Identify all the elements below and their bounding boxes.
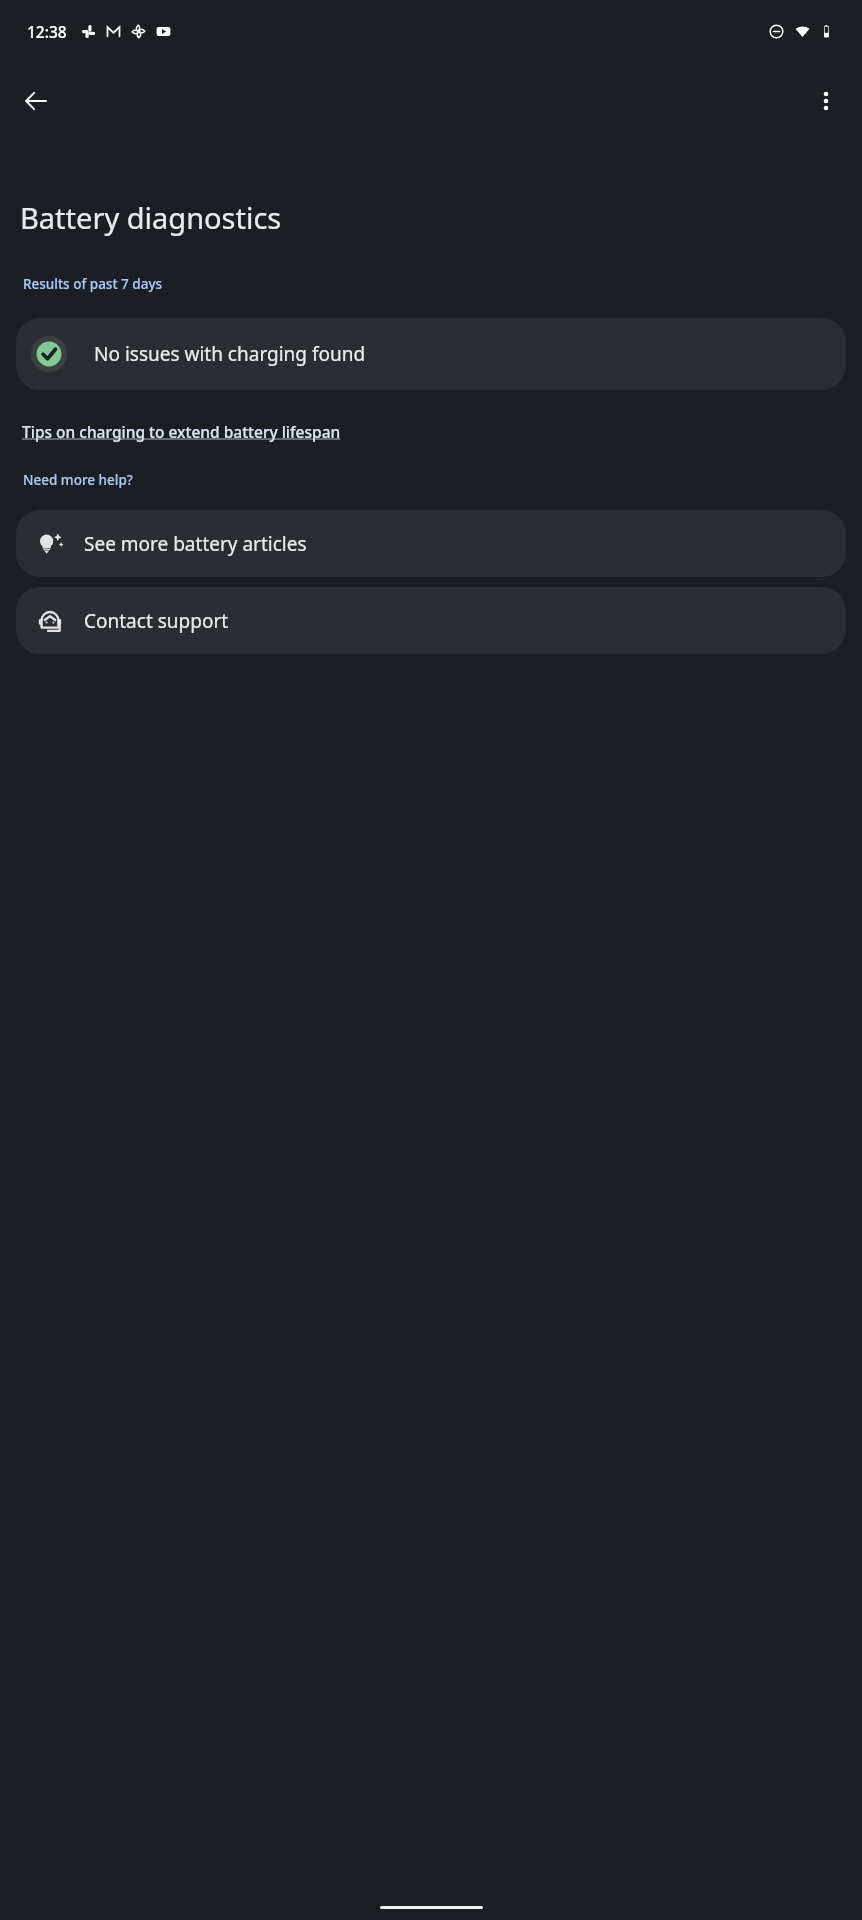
button[interactable]: See more battery articles	[16, 510, 846, 577]
staticText: Tips on charging to extend battery lifes…	[22, 421, 341, 442]
staticText: Battery diagnostics	[20, 198, 282, 237]
button[interactable]: Tips on charging to extend battery lifes…	[20, 418, 343, 445]
staticText: No issues with charging found	[94, 341, 366, 367]
button[interactable]: Contact support	[16, 587, 846, 654]
button[interactable]: No issues with charging found	[16, 318, 846, 390]
staticText: Need more help?	[23, 471, 133, 489]
button[interactable]: More options	[800, 75, 852, 127]
button[interactable]: Back	[10, 75, 62, 127]
staticText: Contact support	[84, 608, 229, 634]
staticText: See more battery articles	[84, 531, 307, 557]
staticText: Results of past 7 days	[23, 275, 163, 293]
staticText: 12:38	[27, 21, 67, 42]
